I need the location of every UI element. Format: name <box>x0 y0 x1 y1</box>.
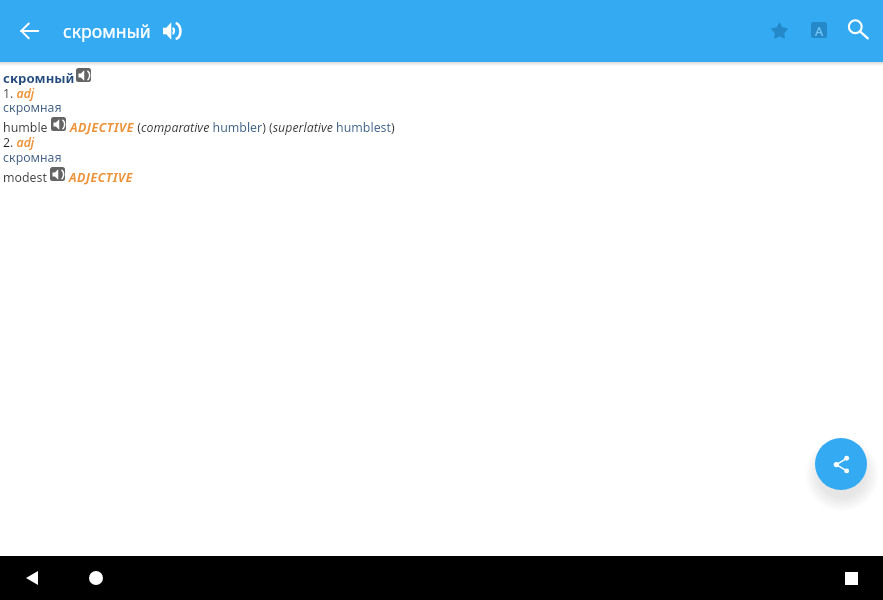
staticText: скромная <box>3 149 62 165</box>
button[interactable]: Pronounce <box>159 18 185 44</box>
staticText: ADJECTIVE (comparative humbler) (superla… <box>70 119 395 136</box>
staticText: ADJECTIVE <box>69 169 134 186</box>
button[interactable]: Favorite <box>761 12 797 48</box>
button[interactable]: Font size <box>801 12 837 48</box>
button[interactable]: Search <box>840 11 876 47</box>
staticText: humble <box>3 119 48 136</box>
staticText: 2. adj <box>3 134 35 150</box>
button[interactable]: Pronounce <box>51 117 66 131</box>
staticText: modest <box>3 169 47 186</box>
button[interactable]: Back <box>18 564 46 592</box>
staticText: скромный <box>63 19 151 43</box>
staticText: 1. adj <box>3 85 35 101</box>
button[interactable]: Pronounce <box>50 167 65 181</box>
staticText: скромная <box>3 99 62 115</box>
button[interactable]: Home <box>82 564 110 592</box>
button[interactable]: Share <box>815 438 867 490</box>
button[interactable]: Back <box>12 13 46 47</box>
button[interactable]: Pronounce <box>76 68 91 82</box>
staticText: A <box>815 22 824 38</box>
button[interactable]: Recents <box>837 564 865 592</box>
staticText: скромный <box>3 69 75 85</box>
